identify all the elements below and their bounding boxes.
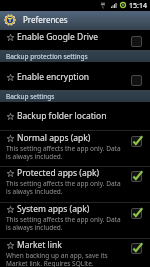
staticText: Backup protection settings bbox=[6, 52, 88, 61]
staticText: Market link bbox=[17, 239, 62, 251]
staticText: This setting affects the app only. Data … bbox=[6, 144, 121, 161]
button[interactable]: Protected apps (apk) bbox=[131, 171, 142, 182]
button[interactable]: App icon bbox=[5, 15, 15, 25]
staticText: Normal apps (apk) bbox=[17, 132, 91, 144]
staticText: When backing up an app, save its Market … bbox=[6, 251, 108, 267]
staticText: 15:14 bbox=[129, 1, 147, 11]
staticText: Backup folder location bbox=[17, 110, 107, 122]
staticText: Enable Google Drive bbox=[17, 31, 99, 43]
button[interactable]: Protected apps (apk) bbox=[0, 166, 150, 202]
button[interactable]: System apps (apk) bbox=[131, 208, 142, 219]
button[interactable]: Enable Google Drive bbox=[0, 30, 150, 50]
staticText: Preferences bbox=[23, 14, 68, 25]
staticText: Enable encryption bbox=[17, 71, 90, 83]
staticText: Protected apps (apk) bbox=[17, 167, 100, 179]
button[interactable]: Normal apps (apk) bbox=[131, 136, 142, 147]
button[interactable]: Normal apps (apk) bbox=[0, 130, 150, 166]
button[interactable]: Backup folder location bbox=[0, 102, 150, 130]
button[interactable]: Enable encryption bbox=[0, 62, 150, 90]
button[interactable]: Enable encryption bbox=[131, 75, 142, 86]
staticText: Backup settings bbox=[6, 92, 55, 101]
staticText: This setting affects the app only. Data … bbox=[6, 215, 121, 232]
button[interactable]: System apps (apk) bbox=[0, 202, 150, 238]
staticText: This setting affects the app only. Data … bbox=[6, 179, 121, 196]
button[interactable]: Enable Google Drive bbox=[131, 36, 142, 47]
staticText: System apps (apk) bbox=[17, 203, 90, 215]
button[interactable]: Market link bbox=[0, 238, 150, 267]
button[interactable]: Market link bbox=[131, 243, 142, 254]
